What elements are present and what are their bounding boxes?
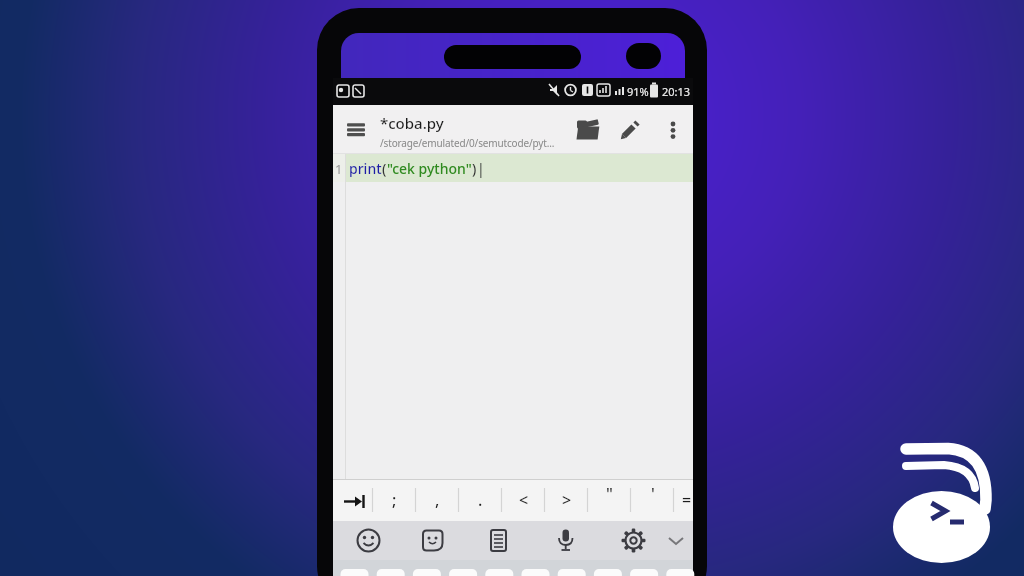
staticText: "cek python"	[387, 159, 472, 178]
staticText: ,	[435, 489, 440, 511]
button[interactable]: >	[545, 479, 588, 521]
staticText: print	[349, 159, 382, 178]
staticText: (	[382, 159, 387, 178]
staticText: ;	[392, 489, 397, 511]
button[interactable]: .	[459, 479, 502, 521]
staticText: |	[477, 159, 485, 178]
staticText: >	[562, 489, 572, 511]
staticText: 20:13	[662, 84, 691, 99]
button[interactable]: "	[588, 479, 631, 521]
button[interactable]	[484, 526, 513, 555]
staticText: *coba.py	[380, 113, 444, 133]
button[interactable]	[619, 526, 648, 555]
staticText: 1	[335, 160, 343, 178]
staticText: "	[606, 483, 613, 505]
button[interactable]: =	[674, 479, 693, 521]
staticText: <	[519, 489, 529, 511]
button[interactable]	[354, 526, 383, 555]
staticText: .	[478, 489, 483, 511]
staticText: =	[682, 489, 692, 511]
button[interactable]: ;	[373, 479, 416, 521]
button[interactable]	[551, 526, 580, 555]
button[interactable]: <	[502, 479, 545, 521]
button[interactable]	[573, 115, 603, 145]
button[interactable]	[617, 115, 645, 143]
button[interactable]	[665, 530, 687, 552]
button[interactable]	[341, 119, 367, 141]
staticText: /storage/emulated/0/semutcode/pyt...	[380, 136, 555, 150]
button[interactable]	[418, 526, 447, 555]
staticText: )	[472, 159, 477, 178]
staticText: 91%	[627, 84, 649, 99]
button[interactable]: ,	[416, 479, 459, 521]
staticText: '	[651, 483, 655, 505]
button[interactable]	[661, 115, 685, 145]
button[interactable]: '	[631, 479, 674, 521]
